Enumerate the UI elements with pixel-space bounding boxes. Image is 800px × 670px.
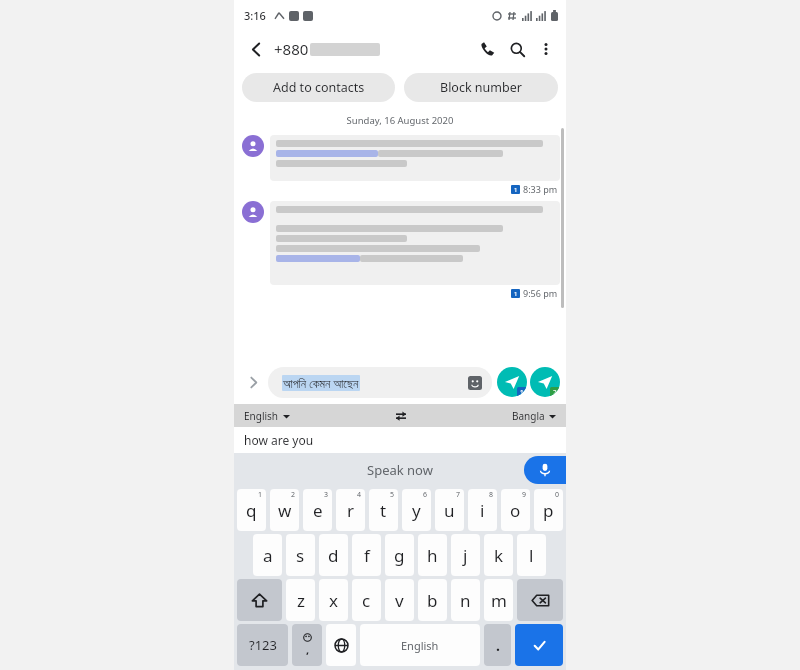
- staticText: 5: [390, 490, 395, 500]
- button[interactable]: p: [534, 489, 563, 531]
- staticText: b: [427, 589, 438, 612]
- button[interactable]: k: [484, 534, 513, 576]
- button[interactable]: r: [336, 489, 365, 531]
- staticText: 3:16: [244, 8, 266, 23]
- button[interactable]: Add to contacts: [242, 73, 395, 102]
- staticText: 2: [291, 490, 296, 500]
- button[interactable]: Send 1: [497, 367, 527, 397]
- button[interactable]: i: [468, 489, 497, 531]
- button[interactable]: j: [451, 534, 480, 576]
- button[interactable]: English: [242, 408, 292, 424]
- button[interactable]: z: [286, 579, 315, 621]
- staticText: g: [394, 544, 405, 567]
- button[interactable]: Voice input: [524, 456, 566, 484]
- staticText: 6: [423, 490, 428, 500]
- button[interactable]: a: [253, 534, 282, 576]
- button[interactable]: q: [237, 489, 266, 531]
- staticText: t: [380, 499, 387, 522]
- staticText: c: [362, 589, 371, 612]
- staticText: 2: [553, 388, 557, 397]
- button[interactable]: Send 2: [530, 367, 560, 397]
- staticText: f: [364, 544, 370, 567]
- button[interactable]: b: [418, 579, 447, 621]
- staticText: w: [278, 499, 292, 522]
- button[interactable]: c: [352, 579, 381, 621]
- button[interactable]: n: [451, 579, 480, 621]
- staticText: ?123: [249, 636, 277, 654]
- button[interactable]: g: [385, 534, 414, 576]
- staticText: আপনি কেমন আছেন: [283, 375, 359, 391]
- staticText: Sunday, 16 August 2020: [234, 114, 566, 127]
- button[interactable]: how are you: [234, 427, 566, 453]
- staticText: e: [313, 499, 323, 522]
- button[interactable]: f: [352, 534, 381, 576]
- button[interactable]: Backspace: [517, 579, 563, 621]
- staticText: o: [510, 499, 521, 522]
- button[interactable]: Block number: [404, 73, 558, 102]
- staticText: a: [263, 544, 273, 567]
- button[interactable]: Shift: [237, 579, 282, 621]
- staticText: 8: [489, 490, 494, 500]
- button[interactable]: [270, 201, 560, 285]
- staticText: 1: [514, 290, 518, 298]
- button[interactable]: Done: [515, 624, 563, 666]
- button[interactable]: l: [517, 534, 546, 576]
- staticText: q: [246, 499, 257, 522]
- staticText: 4: [357, 490, 362, 500]
- staticText: p: [543, 499, 554, 522]
- button[interactable]: x: [319, 579, 348, 621]
- button[interactable]: y: [402, 489, 431, 531]
- button[interactable]: Stickers: [468, 376, 482, 390]
- button[interactable]: Swap languages: [392, 407, 410, 425]
- button[interactable]: d: [319, 534, 348, 576]
- button[interactable]: [270, 135, 560, 181]
- button[interactable]: e: [303, 489, 332, 531]
- button[interactable]: Search: [502, 34, 532, 64]
- staticText: +880: [274, 39, 309, 59]
- button[interactable]: English: [360, 624, 480, 666]
- button[interactable]: Back: [240, 33, 272, 65]
- button[interactable]: Emoji: [292, 624, 322, 666]
- staticText: 9: [522, 490, 527, 500]
- staticText: i: [480, 499, 485, 522]
- staticText: 1: [520, 388, 524, 397]
- button[interactable]: v: [385, 579, 414, 621]
- button[interactable]: More options: [532, 35, 560, 63]
- button[interactable]: Bangla: [510, 408, 558, 424]
- staticText: ,: [306, 642, 310, 657]
- button[interactable]: .: [484, 624, 511, 666]
- staticText: l: [529, 544, 534, 567]
- staticText: u: [444, 499, 455, 522]
- staticText: 0: [555, 490, 560, 500]
- button[interactable]: Change language: [326, 624, 356, 666]
- button[interactable]: h: [418, 534, 447, 576]
- button[interactable]: t: [369, 489, 398, 531]
- staticText: 3: [324, 490, 329, 500]
- staticText: d: [328, 544, 339, 567]
- staticText: m: [491, 589, 507, 612]
- staticText: Block number: [440, 79, 522, 96]
- staticText: s: [296, 544, 305, 567]
- button[interactable]: ?123: [237, 624, 288, 666]
- button[interactable]: m: [484, 579, 513, 621]
- button[interactable]: u: [435, 489, 464, 531]
- staticText: 1: [258, 490, 263, 500]
- staticText: Add to contacts: [273, 79, 365, 96]
- staticText: x: [329, 589, 338, 612]
- staticText: Speak now: [367, 461, 433, 479]
- button[interactable]: Expand: [240, 369, 266, 395]
- button[interactable]: Call: [472, 34, 502, 64]
- button[interactable]: o: [501, 489, 530, 531]
- staticText: v: [395, 589, 404, 612]
- staticText: how are you: [244, 432, 314, 448]
- staticText: Bangla: [512, 409, 545, 423]
- staticText: 1: [514, 186, 518, 194]
- staticText: k: [494, 544, 504, 567]
- button[interactable]: s: [286, 534, 315, 576]
- button[interactable]: w: [270, 489, 299, 531]
- staticText: .: [496, 636, 500, 655]
- staticText: 7: [456, 490, 461, 500]
- button[interactable]: আপনি কেমন আছেন: [268, 367, 492, 398]
- staticText: j: [463, 544, 468, 567]
- staticText: English: [244, 409, 279, 423]
